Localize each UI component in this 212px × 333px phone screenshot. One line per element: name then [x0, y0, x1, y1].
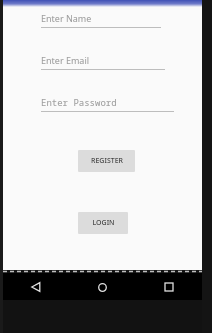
- button[interactable]: Enter Email: [41, 54, 174, 70]
- button[interactable]: REGISTER: [78, 150, 135, 172]
- staticText: Enter Name: [41, 12, 92, 24]
- button[interactable]: Home: [89, 274, 115, 300]
- staticText: REGISTER: [91, 156, 123, 166]
- button[interactable]: Recent apps: [156, 274, 182, 300]
- button[interactable]: Enter Password: [41, 96, 174, 112]
- staticText: Enter Email: [41, 54, 90, 66]
- button[interactable]: LOGIN: [78, 212, 128, 234]
- staticText: LOGIN: [92, 218, 115, 228]
- staticText: Enter Password: [41, 96, 117, 108]
- button[interactable]: Enter Name: [41, 12, 174, 28]
- button[interactable]: Back: [23, 274, 49, 300]
